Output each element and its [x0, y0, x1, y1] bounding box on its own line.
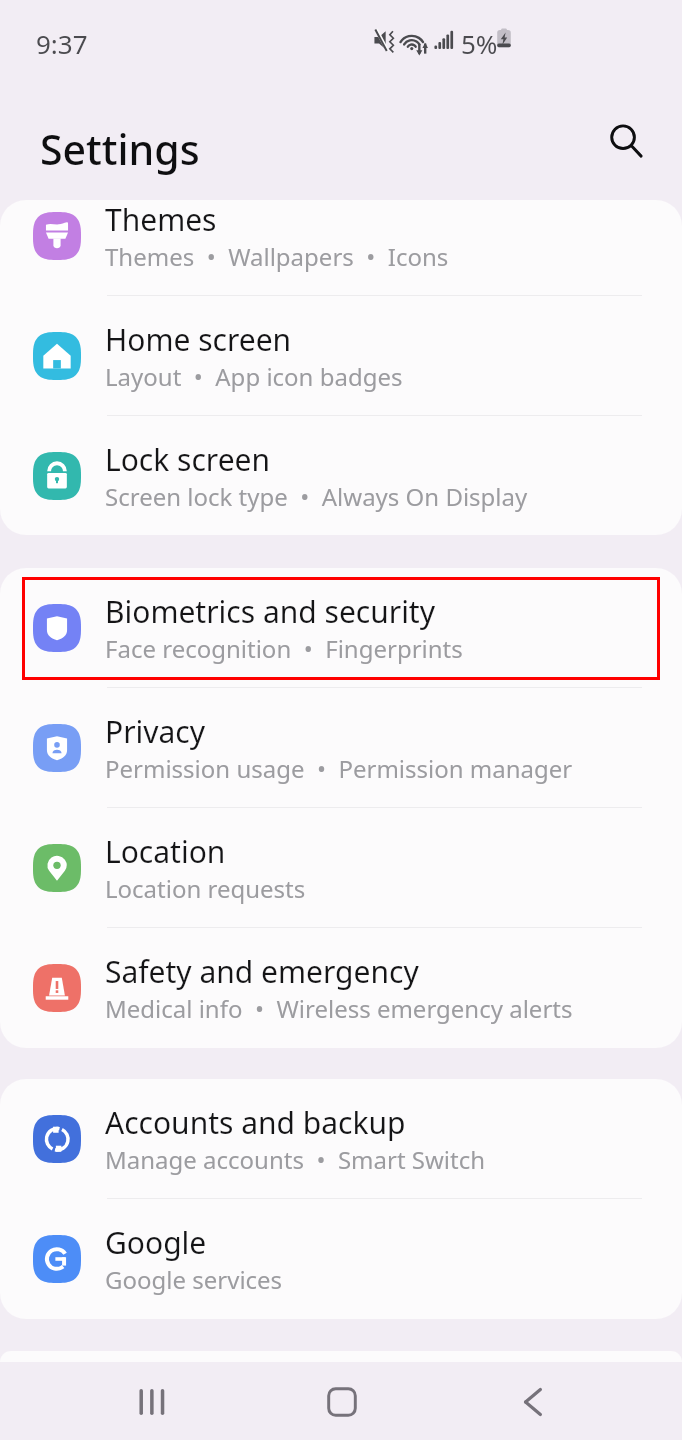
staticText: Medical info • Wireless emergency alerts	[105, 992, 573, 1025]
button[interactable]: Biometrics and security	[0, 568, 682, 688]
staticText: Google	[105, 1222, 207, 1263]
staticText: Google services	[105, 1263, 283, 1296]
staticText: Biometrics and security	[105, 591, 435, 632]
button[interactable]: Back	[452, 1366, 612, 1438]
button[interactable]: Google	[0, 1199, 682, 1319]
staticText: Face recognition • Fingerprints	[105, 632, 463, 665]
staticText: Permission usage • Permission manager	[105, 752, 573, 785]
staticText: 9:37	[36, 26, 88, 61]
staticText: Themes • Wallpapers • Icons	[105, 240, 449, 273]
staticText: Screen lock type • Always On Display	[105, 480, 528, 513]
staticText: Themes	[105, 200, 217, 240]
button[interactable]: Search	[594, 109, 658, 173]
button[interactable]: Themes	[0, 200, 682, 296]
staticText: Location	[105, 831, 226, 872]
staticText: 5%	[461, 26, 498, 61]
button[interactable]: Safety and emergency	[0, 928, 682, 1048]
staticText: Location requests	[105, 872, 306, 905]
staticText: Accounts and backup	[105, 1102, 406, 1143]
button[interactable]: Home	[262, 1366, 422, 1438]
staticText: Safety and emergency	[105, 951, 419, 992]
button[interactable]: Lock screen	[0, 416, 682, 535]
staticText: Home screen	[105, 319, 292, 360]
staticText: Layout • App icon badges	[105, 360, 403, 393]
button[interactable]: Privacy	[0, 688, 682, 808]
button[interactable]: Accounts and backup	[0, 1079, 682, 1199]
staticText: Lock screen	[105, 439, 271, 480]
button[interactable]: Home screen	[0, 296, 682, 416]
button[interactable]: Location	[0, 808, 682, 928]
button[interactable]: Recent apps	[72, 1366, 232, 1438]
staticText: Manage accounts • Smart Switch	[105, 1143, 486, 1176]
staticText: Privacy	[105, 711, 206, 752]
staticText: Settings	[40, 121, 200, 177]
